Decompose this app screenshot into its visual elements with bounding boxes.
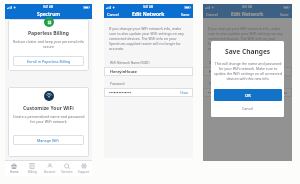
staticText: Paperless Billing [28,30,69,37]
other: Support [81,163,87,169]
staticText: •••••••••••••• [208,90,231,96]
staticText: WiFi Network Name (SSID) [209,61,249,65]
staticText: Customize Your WiFi [23,105,74,112]
button[interactable]: Cancel [242,106,254,111]
other: Billing [29,163,35,169]
staticText: WiFi Network Name (SSID) [110,61,150,65]
staticText: Password [110,82,125,86]
staticText: Home [10,170,19,174]
button[interactable]: Cancel [206,12,218,17]
staticText: OK [245,93,251,98]
staticText: Edit Network [231,11,264,18]
button[interactable]: OK [214,89,282,101]
staticText: Enroll in Paperless Billing [27,59,71,64]
button[interactable]: Show [279,91,288,95]
staticText: HenryinHouse [209,69,237,74]
button[interactable]: Manage WiFi [13,135,84,145]
staticText: This will change the name and password f… [214,61,282,81]
staticText: •••••••••••••• [109,90,132,96]
staticText: Create a personalized name and password … [12,114,85,124]
button[interactable]: •••••••••••••• [203,88,292,97]
button[interactable]: Account [41,161,58,176]
button[interactable]: Home [5,161,23,176]
staticText: Password [209,82,224,86]
staticText: If you change your WiFi network info, ma… [109,26,189,51]
staticText: Account [44,170,56,174]
staticText: Edit Network [132,11,165,18]
staticText: 9:41 AM [43,5,54,9]
other: Home [11,163,17,169]
button[interactable]: •••••••••••••• [104,88,193,97]
staticText: If you change your WiFi network info, ma… [208,26,288,51]
button[interactable]: HenryinHouse [203,67,292,76]
staticText: Reduce clutter and keep your personal in… [12,39,85,49]
staticText: 9:41 AM [143,5,154,9]
button[interactable]: Support [75,161,92,176]
button[interactable]: Services [58,161,75,176]
staticText: HenryinHouse [110,69,138,74]
staticText: Support [78,170,90,174]
button[interactable]: Save [181,12,190,17]
button[interactable]: Enroll in Paperless Billing [13,56,84,66]
button[interactable]: Save [280,12,289,17]
staticText: Billing [28,170,37,174]
button[interactable]: Billing [23,161,41,176]
button[interactable]: Cancel [107,12,119,17]
staticText: Spectrum [37,11,60,18]
button[interactable]: HenryinHouse [104,67,193,76]
staticText: Manage WiFi [37,138,60,143]
other: Services [64,163,70,169]
staticText: 9:41 AM [242,5,253,9]
button[interactable]: Show [180,91,189,95]
staticText: Save Changes [225,47,271,56]
staticText: Services [61,170,73,174]
other: Account [47,163,53,169]
